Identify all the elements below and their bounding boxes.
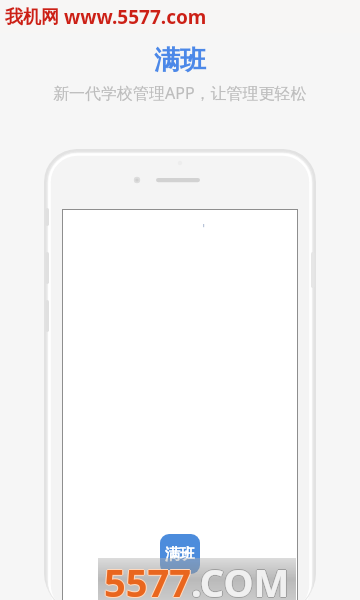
staticText: 新一代学校管理APP，让管理更轻松 [53,82,307,104]
staticText: 满班 [154,44,206,77]
staticText: 5577 [105,556,192,600]
staticText: 5577 [104,557,191,600]
staticText: .COM [191,555,290,599]
staticText: .COM [191,556,290,600]
staticText: 我机网 [5,6,59,29]
staticText: 5577 [104,556,191,600]
staticText: 满班 [165,545,195,564]
staticText: .COM [190,556,289,600]
staticText: www.5577.com [64,4,207,30]
staticText: .COM [192,556,291,600]
staticText: 5577 [103,556,190,600]
staticText: .COM [191,557,290,600]
staticText: 5577 [104,555,191,599]
button[interactable]: 满班 app icon [160,534,200,574]
